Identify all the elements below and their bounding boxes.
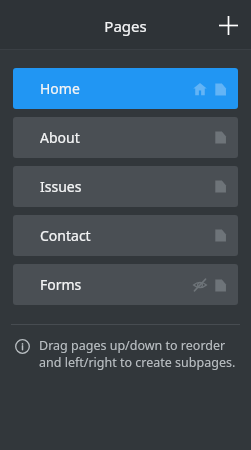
- staticText: Pages: [0, 16, 251, 36]
- staticText: Contact: [40, 226, 91, 245]
- staticText: Home: [40, 79, 80, 98]
- staticText: About: [40, 128, 80, 147]
- staticText: Drag pages up/down to reorder and left/r…: [39, 337, 241, 371]
- button[interactable]: Add page: [212, 9, 244, 41]
- button[interactable]: Forms: [13, 264, 238, 305]
- staticText: Issues: [40, 177, 82, 196]
- button[interactable]: Home: [13, 68, 238, 109]
- staticText: Forms: [40, 275, 82, 294]
- button[interactable]: Issues: [13, 166, 238, 207]
- button[interactable]: Contact: [13, 215, 238, 256]
- button[interactable]: About: [13, 117, 238, 158]
